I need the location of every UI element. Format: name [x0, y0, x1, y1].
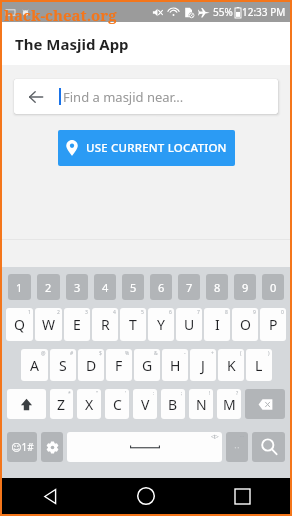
staticText: " [96, 390, 99, 397]
staticText: ◁▷ [211, 433, 219, 439]
staticText: V [141, 395, 150, 414]
staticText: # [70, 350, 74, 357]
button[interactable]: 9 [234, 274, 256, 300]
staticText: M [223, 395, 236, 414]
button[interactable]: W [35, 308, 62, 341]
button[interactable]: Punctuation [226, 432, 248, 462]
button[interactable]: Y [148, 308, 174, 341]
button[interactable]: USE CURRENT LOCATION [58, 130, 235, 166]
staticText: 12:33 PM [242, 5, 286, 19]
staticText: 5 [130, 280, 137, 295]
button[interactable]: ☺1# [7, 432, 37, 462]
staticText: ' [125, 390, 127, 397]
button[interactable]: G [134, 349, 160, 381]
button[interactable]: N [189, 389, 213, 419]
button[interactable]: Q [6, 308, 33, 341]
button[interactable]: Backspace [245, 389, 285, 419]
staticText: T [129, 315, 137, 334]
button[interactable]: O [232, 308, 258, 341]
button[interactable]: K [218, 349, 244, 381]
staticText: 5 [141, 309, 144, 316]
staticText: O [240, 315, 251, 334]
button[interactable]: T [120, 308, 146, 341]
button[interactable]: B [161, 389, 185, 419]
staticText: : [153, 390, 155, 397]
button[interactable]: A [21, 349, 48, 381]
staticText: 0 [281, 309, 284, 316]
staticText: 7 [186, 280, 193, 295]
button[interactable]: Back [2, 478, 98, 514]
staticText: H [170, 356, 181, 375]
staticText: 0 [270, 280, 277, 295]
button[interactable]: H [162, 349, 188, 381]
button[interactable]: 5 [122, 274, 144, 300]
button[interactable]: 2 [37, 274, 60, 300]
button[interactable]: F [106, 349, 132, 381]
staticText: & [154, 350, 158, 357]
staticText: 1 [28, 309, 31, 316]
staticText: Y [157, 315, 165, 334]
button[interactable]: R [92, 308, 118, 341]
button[interactable]: Back [14, 79, 57, 114]
button[interactable]: V [133, 389, 157, 419]
staticText: A [30, 356, 39, 375]
staticText: N [196, 395, 207, 414]
button[interactable]: E [64, 308, 90, 341]
staticText: Q [14, 315, 25, 334]
staticText: L [255, 356, 263, 375]
staticText: ! [209, 390, 211, 397]
staticText: 3 [85, 309, 88, 316]
staticText: J [201, 356, 205, 375]
staticText: 9 [253, 309, 256, 316]
button[interactable]: Search [252, 432, 285, 462]
staticText: D [86, 356, 97, 375]
button[interactable]: I [204, 308, 230, 341]
staticText: 55% [213, 5, 233, 19]
staticText: ? [236, 390, 239, 397]
staticText: 2 [57, 309, 60, 316]
button[interactable]: Space [67, 432, 222, 462]
button[interactable]: S [50, 349, 76, 381]
button[interactable]: 4 [94, 274, 116, 300]
button[interactable]: P [260, 308, 286, 341]
button[interactable]: Recent apps [194, 478, 290, 514]
staticText: 8 [214, 280, 221, 295]
button[interactable]: J [190, 349, 216, 381]
button[interactable]: L [246, 349, 272, 381]
staticText: 6 [158, 280, 165, 295]
button[interactable]: 0 [262, 274, 284, 300]
staticText: 9 [242, 280, 249, 295]
button[interactable]: Home [98, 478, 194, 514]
staticText: - [184, 350, 186, 357]
button[interactable]: M [217, 389, 241, 419]
staticText: K [227, 356, 236, 375]
staticText: C [113, 395, 122, 414]
staticText: P [269, 315, 278, 334]
button[interactable]: 7 [178, 274, 200, 300]
staticText: U [184, 315, 195, 334]
button[interactable]: Keyboard settings [41, 432, 63, 462]
button[interactable]: 8 [206, 274, 228, 300]
button[interactable]: 1 [8, 274, 31, 300]
button[interactable]: C [105, 389, 129, 419]
staticText: $ [99, 350, 102, 357]
staticText: + [211, 350, 214, 357]
button[interactable]: Shift [7, 389, 46, 419]
button[interactable]: 3 [66, 274, 88, 300]
button[interactable]: D [78, 349, 104, 381]
staticText: S [59, 356, 67, 375]
button[interactable]: Z [50, 389, 73, 419]
staticText: F [115, 356, 123, 375]
staticText: ( [240, 350, 242, 357]
staticText: Find a masjid near... [63, 88, 184, 106]
button[interactable]: Back [14, 79, 278, 114]
staticText: X [85, 395, 94, 414]
button[interactable]: 6 [150, 274, 172, 300]
button[interactable]: X [77, 389, 101, 419]
button[interactable]: U [176, 308, 202, 341]
staticText: I [215, 315, 220, 334]
staticText: 7 [197, 309, 200, 316]
staticText: B [168, 395, 178, 414]
staticText: G [142, 356, 153, 375]
staticText: R [101, 315, 110, 334]
